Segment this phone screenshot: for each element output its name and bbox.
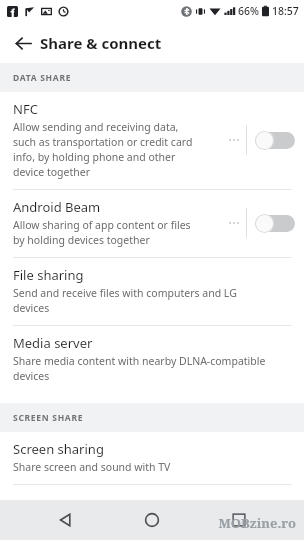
staticText: 18:57 (272, 4, 299, 18)
staticText: Share & connect (40, 33, 162, 53)
button[interactable]: Back (43, 500, 87, 540)
button[interactable]: NFC (0, 92, 304, 189)
staticText: MOBzine.ro (218, 514, 296, 532)
staticText: Allow sending and receiving data, (13, 120, 179, 134)
button[interactable]: Recent apps (217, 500, 261, 540)
staticText: File sharing (13, 266, 84, 284)
staticText: Screen sharing (13, 440, 104, 458)
staticText: NFC (13, 100, 38, 118)
staticText: by holding devices together (13, 233, 150, 247)
staticText: Android Beam (13, 198, 101, 216)
staticText: such as transportation or credit card (13, 135, 193, 149)
staticText: Media server (13, 334, 93, 352)
staticText: SCREEN SHARE (13, 412, 84, 424)
button[interactable]: Home (130, 500, 174, 540)
staticText: DATA SHARE (13, 72, 72, 84)
button[interactable]: Android Beam (0, 190, 304, 257)
staticText: devices (13, 369, 50, 383)
button[interactable]: Screen sharing (0, 432, 304, 484)
staticText: info, by holding phone and other (13, 150, 176, 164)
staticText: Share screen and sound with TV (13, 460, 171, 474)
button[interactable]: File sharing (0, 258, 304, 325)
staticText: Share media content with nearby DLNA-com… (13, 354, 266, 368)
button[interactable]: Toggle (255, 213, 295, 234)
staticText: 66% (238, 4, 259, 18)
button[interactable]: Back (9, 29, 37, 57)
staticText: Allow sharing of app content or files (13, 218, 191, 232)
staticText: device together (13, 165, 90, 179)
staticText: devices (13, 301, 50, 315)
button[interactable]: Media server (0, 326, 304, 393)
button[interactable]: Toggle (255, 130, 295, 151)
staticText: Send and receive files with computers an… (13, 286, 237, 300)
